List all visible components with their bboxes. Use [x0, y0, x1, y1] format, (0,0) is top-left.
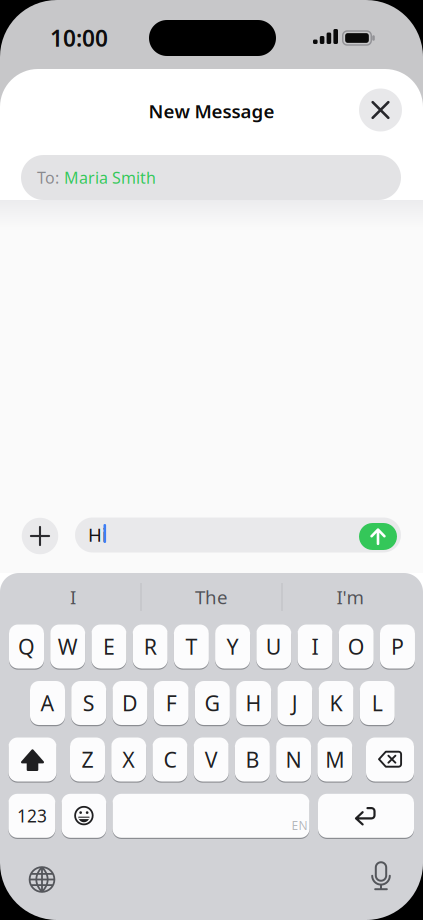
staticText: Q	[18, 632, 35, 661]
button[interactable]: X	[111, 737, 146, 781]
button[interactable]: Close	[359, 88, 402, 131]
staticText: E	[103, 632, 115, 661]
button[interactable]: J	[277, 681, 312, 725]
button[interactable]: N	[276, 737, 311, 781]
staticText: Y	[227, 632, 239, 661]
button[interactable]: Shift	[8, 737, 56, 781]
staticText: The	[195, 585, 228, 609]
button[interactable]: Next keyboard	[28, 865, 56, 893]
button[interactable]: Z	[70, 737, 105, 781]
button[interactable]: Add attachment	[22, 518, 58, 554]
staticText: L	[372, 689, 383, 717]
button[interactable]: Message field	[75, 517, 401, 552]
button[interactable]: I'm	[290, 580, 410, 614]
staticText: U	[266, 632, 282, 661]
button[interactable]: O	[339, 624, 374, 668]
button[interactable]: Q	[9, 624, 44, 668]
button[interactable]: I	[297, 624, 332, 668]
button[interactable]: 123	[8, 794, 55, 838]
button[interactable]: Delete	[366, 737, 414, 781]
staticText: V	[205, 745, 218, 774]
staticText: D	[122, 689, 138, 717]
button[interactable]: I	[13, 580, 133, 614]
staticText: K	[329, 689, 342, 717]
button[interactable]: S	[71, 681, 106, 725]
staticText: P	[391, 632, 404, 661]
staticText: F	[166, 689, 177, 717]
button[interactable]: A	[30, 681, 65, 725]
button[interactable]: Return	[318, 794, 414, 838]
button[interactable]: E	[91, 624, 126, 668]
button[interactable]: R	[133, 624, 168, 668]
button[interactable]: D	[112, 681, 147, 725]
button[interactable]: G	[195, 681, 230, 725]
staticText: R	[144, 632, 157, 661]
staticText: H	[246, 689, 262, 717]
staticText: N	[286, 745, 302, 774]
staticText: S	[83, 689, 95, 717]
staticText: I'm	[336, 585, 363, 609]
staticText: J	[292, 689, 298, 717]
staticText: New Message	[148, 99, 274, 123]
button[interactable]: The	[151, 580, 271, 614]
button[interactable]: F	[154, 681, 189, 725]
button[interactable]: T	[174, 624, 209, 668]
button[interactable]: P	[380, 624, 415, 668]
button[interactable]: Space	[112, 794, 309, 838]
staticText: B	[245, 745, 259, 774]
button[interactable]: To: Maria Smith	[21, 155, 401, 200]
button[interactable]: W	[50, 624, 85, 668]
staticText: EN	[291, 817, 307, 833]
staticText: To:	[37, 167, 59, 188]
staticText: G	[204, 689, 220, 717]
staticText: 123	[17, 804, 47, 827]
button[interactable]: B	[235, 737, 270, 781]
staticText: Z	[81, 745, 93, 774]
button[interactable]: U	[256, 624, 291, 668]
button[interactable]: V	[194, 737, 229, 781]
button[interactable]: H	[236, 681, 271, 725]
button[interactable]: Send	[359, 523, 397, 550]
staticText: Hi	[88, 522, 107, 547]
staticText: I	[311, 632, 318, 661]
button[interactable]: C	[152, 737, 187, 781]
button[interactable]: K	[318, 681, 353, 725]
staticText: W	[58, 632, 78, 661]
button[interactable]: M	[317, 737, 352, 781]
button[interactable]: Emoji	[62, 794, 106, 838]
staticText: X	[122, 745, 135, 774]
staticText: M	[325, 745, 344, 774]
staticText: A	[40, 689, 54, 717]
button[interactable]: L	[360, 681, 395, 725]
staticText: 10:00	[50, 23, 108, 53]
staticText: C	[163, 745, 176, 774]
button[interactable]: Dictation	[369, 862, 393, 894]
staticText: O	[348, 632, 365, 661]
staticText: T	[185, 632, 197, 661]
staticText: Maria Smith	[64, 167, 156, 188]
button[interactable]: Y	[215, 624, 250, 668]
staticText: I	[70, 585, 76, 609]
